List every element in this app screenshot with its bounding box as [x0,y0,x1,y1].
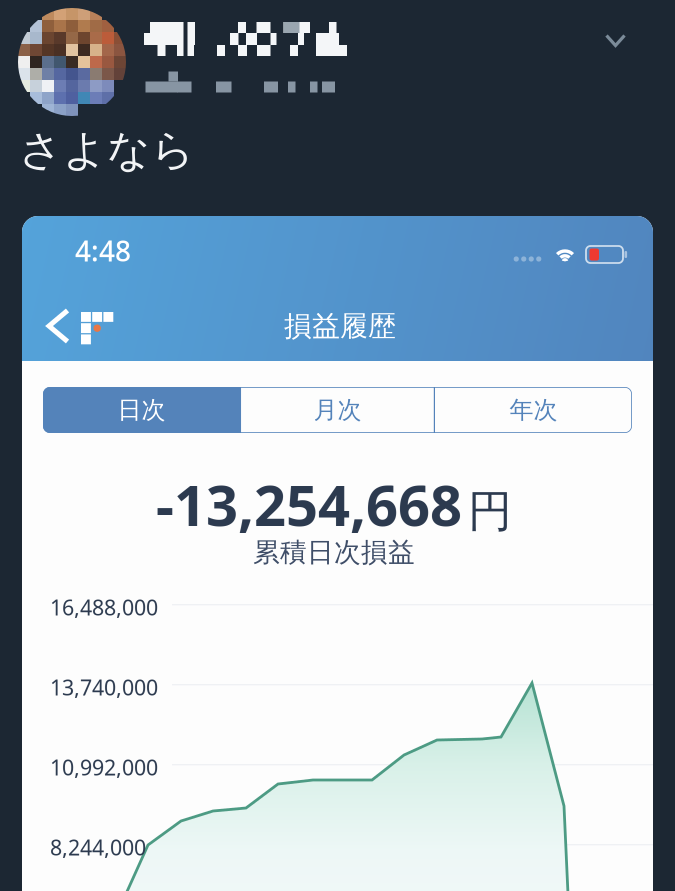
staticText: 日次 [117,395,165,425]
staticText: 累積日次損益 [253,536,415,569]
staticText: 4:48 [75,232,131,269]
staticText: 16,488,000 [50,593,158,621]
button[interactable]: 日次 [43,387,240,433]
staticText: さよなら [19,124,195,176]
button[interactable]: More options [584,9,648,71]
staticText: 8,244,000 [50,833,146,861]
staticText: 円 [468,484,512,538]
staticText: 13,740,000 [50,673,158,701]
button[interactable]: 月次 [241,387,434,433]
button[interactable]: Back [46,307,70,345]
staticText: 月次 [313,395,361,425]
button[interactable]: 年次 [435,387,632,433]
staticText: 損益履歴 [284,309,396,343]
staticText: -13,254,668 [156,467,462,541]
staticText: 年次 [509,395,557,425]
staticText: 10,992,000 [50,753,158,781]
